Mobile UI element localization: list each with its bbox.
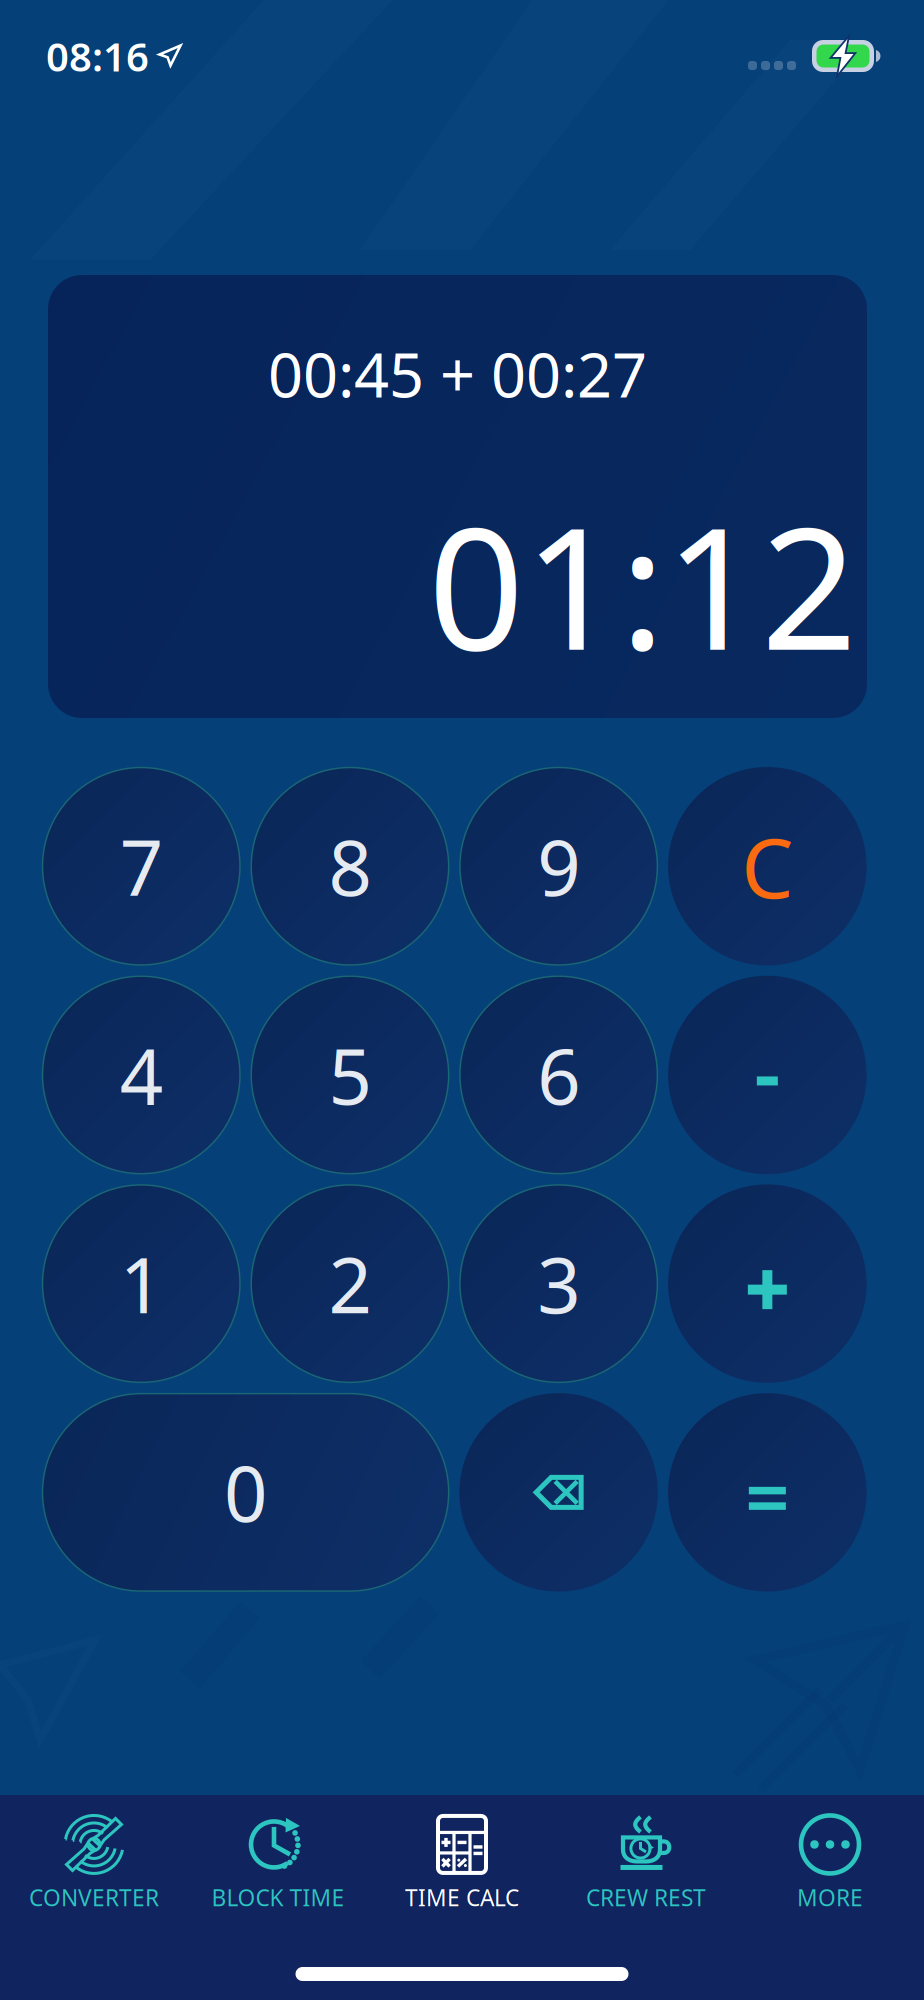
staticText: 3 bbox=[537, 1233, 580, 1334]
staticText: 0 bbox=[224, 1442, 267, 1543]
button[interactable]: 0 bbox=[42, 1393, 449, 1592]
button[interactable]: C bbox=[668, 767, 867, 965]
button[interactable]: BLOCK TIME bbox=[186, 1811, 370, 1915]
button[interactable]: TIME CALC bbox=[370, 1811, 554, 1915]
staticText: 08:16 bbox=[46, 29, 149, 82]
button[interactable]: Plus bbox=[668, 1184, 867, 1383]
staticText: CONVERTER bbox=[29, 1882, 159, 1912]
button[interactable]: Minus bbox=[668, 976, 867, 1174]
button[interactable]: MORE bbox=[738, 1811, 922, 1915]
button[interactable]: 2 bbox=[251, 1184, 449, 1383]
staticText: BLOCK TIME bbox=[211, 1882, 344, 1912]
staticText: 4 bbox=[120, 1024, 163, 1125]
staticText: 5 bbox=[328, 1024, 371, 1125]
button[interactable]: 7 bbox=[42, 767, 240, 965]
button[interactable]: 6 bbox=[459, 976, 658, 1174]
button[interactable]: CREW REST bbox=[554, 1811, 738, 1915]
button[interactable]: Equals bbox=[668, 1393, 867, 1592]
button[interactable]: 1 bbox=[42, 1184, 240, 1383]
staticText: 2 bbox=[328, 1233, 371, 1334]
staticText: CREW REST bbox=[586, 1882, 706, 1912]
staticText: 9 bbox=[537, 816, 580, 917]
staticText: 1 bbox=[120, 1233, 163, 1334]
button[interactable]: Delete bbox=[459, 1393, 658, 1592]
button[interactable]: 4 bbox=[42, 976, 240, 1174]
button[interactable]: 5 bbox=[251, 976, 449, 1174]
staticText: 8 bbox=[328, 816, 371, 917]
staticText: 6 bbox=[537, 1024, 580, 1125]
staticText: MORE bbox=[797, 1882, 863, 1912]
staticText: 00:45 + 00:27 bbox=[268, 333, 647, 414]
staticText: TIME CALC bbox=[405, 1882, 519, 1912]
button[interactable]: 8 bbox=[251, 767, 449, 965]
button[interactable]: 9 bbox=[459, 767, 658, 965]
staticText: 01:12 bbox=[428, 473, 857, 696]
staticText: 7 bbox=[120, 816, 163, 917]
button[interactable]: 3 bbox=[459, 1184, 658, 1383]
button[interactable]: CONVERTER bbox=[2, 1811, 186, 1915]
staticText: C bbox=[741, 811, 793, 921]
